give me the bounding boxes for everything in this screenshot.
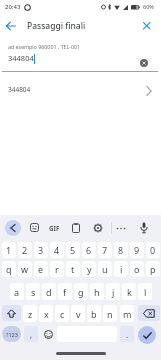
button[interactable] (30, 223, 39, 232)
button[interactable]: 1 (2, 242, 16, 258)
button[interactable]: w (18, 261, 32, 277)
button[interactable]: g (74, 283, 88, 300)
button[interactable] (2, 305, 21, 321)
staticText: n (107, 308, 113, 320)
staticText: y (87, 263, 92, 275)
button[interactable]: p (146, 261, 160, 277)
button[interactable]: GIF (49, 224, 60, 232)
staticText: c (60, 308, 65, 320)
button[interactable]: 9 (130, 242, 144, 258)
staticText: u (102, 263, 108, 275)
button[interactable]: l (138, 283, 152, 300)
staticText: e (38, 263, 44, 275)
staticText: 8 (118, 244, 124, 256)
staticText: m (123, 308, 132, 320)
button[interactable]: z (23, 305, 37, 322)
staticText: , (30, 329, 33, 340)
staticText: f (63, 286, 67, 298)
button[interactable]: d (42, 283, 56, 300)
staticText: 3 (38, 244, 44, 256)
staticText: j (112, 286, 115, 298)
staticText: 2 (22, 244, 28, 256)
button[interactable]: . (120, 326, 134, 342)
button[interactable] (72, 223, 80, 233)
button[interactable]: e (34, 261, 48, 277)
staticText: 0 (150, 244, 156, 256)
staticText: d (46, 286, 52, 298)
button[interactable]: y (82, 261, 96, 277)
button[interactable]: u (98, 261, 112, 277)
staticText: w (21, 263, 29, 275)
staticText: ?123 (6, 331, 18, 338)
button[interactable]: t (66, 261, 80, 277)
staticText: h (94, 286, 100, 298)
button[interactable]: 3 (34, 242, 48, 258)
staticText: 4 (54, 244, 60, 256)
staticText: o (134, 263, 140, 275)
staticText: l (144, 286, 147, 298)
staticText: 344804 (8, 53, 34, 63)
button[interactable]: o (130, 261, 144, 277)
staticText: Passaggi finali (27, 20, 86, 32)
button[interactable]: c (55, 305, 69, 322)
button[interactable]: 344804 (0, 80, 161, 102)
button[interactable]: 6 (82, 242, 96, 258)
staticText: g (78, 286, 84, 298)
button[interactable]: a (10, 283, 24, 300)
staticText: 7 (102, 244, 108, 256)
button[interactable]: f (58, 283, 72, 300)
staticText: 6 (86, 244, 92, 256)
staticText: 20:43 (5, 3, 21, 11)
button[interactable] (2, 17, 20, 35)
staticText: 344804 (8, 85, 31, 94)
staticText: b (91, 308, 97, 320)
button[interactable]: 8 (114, 242, 128, 258)
button[interactable] (138, 17, 156, 35)
staticText: s (31, 286, 36, 298)
staticText: ad esempio 960001 , TEL-001 (8, 43, 81, 50)
staticText: k (127, 286, 132, 298)
button[interactable]: 4 (50, 242, 64, 258)
staticText: 5 (70, 244, 76, 256)
staticText: 1 (6, 244, 12, 256)
button[interactable]: 0 (146, 242, 160, 258)
staticText: q (6, 263, 12, 275)
button[interactable] (138, 305, 160, 321)
staticText: a (14, 286, 20, 298)
staticText: 60% (143, 3, 154, 10)
button[interactable]: r (50, 261, 64, 277)
staticText: x (44, 308, 49, 320)
button[interactable] (116, 227, 126, 230)
button[interactable]: v (71, 305, 85, 322)
staticText: i (120, 263, 123, 275)
staticText: z (28, 308, 33, 320)
button[interactable]: h (90, 283, 104, 300)
button[interactable]: n (103, 305, 117, 322)
button[interactable]: 7 (98, 242, 112, 258)
button[interactable]: , (24, 326, 38, 342)
staticText: p (150, 263, 156, 275)
button[interactable] (93, 223, 103, 233)
staticText: r (55, 263, 59, 275)
staticText: t (71, 263, 75, 275)
button[interactable] (41, 326, 55, 342)
button[interactable]: m (120, 305, 134, 322)
button[interactable]: 5 (66, 242, 80, 258)
staticText: 9 (134, 244, 140, 256)
button[interactable]: 2 (18, 242, 32, 258)
button[interactable]: s (26, 283, 40, 300)
staticText: . (126, 329, 129, 340)
button[interactable]: i (114, 261, 128, 277)
staticText: v (76, 308, 81, 320)
button[interactable]: b (87, 305, 101, 322)
button[interactable] (138, 326, 156, 344)
button[interactable]: j (106, 283, 120, 300)
button[interactable]: ?123 (2, 326, 21, 342)
button[interactable] (5, 220, 21, 236)
button[interactable]: x (39, 305, 53, 322)
button[interactable]: k (122, 283, 136, 300)
button[interactable] (140, 222, 148, 234)
button[interactable]: q (2, 261, 16, 277)
button[interactable] (140, 59, 148, 67)
